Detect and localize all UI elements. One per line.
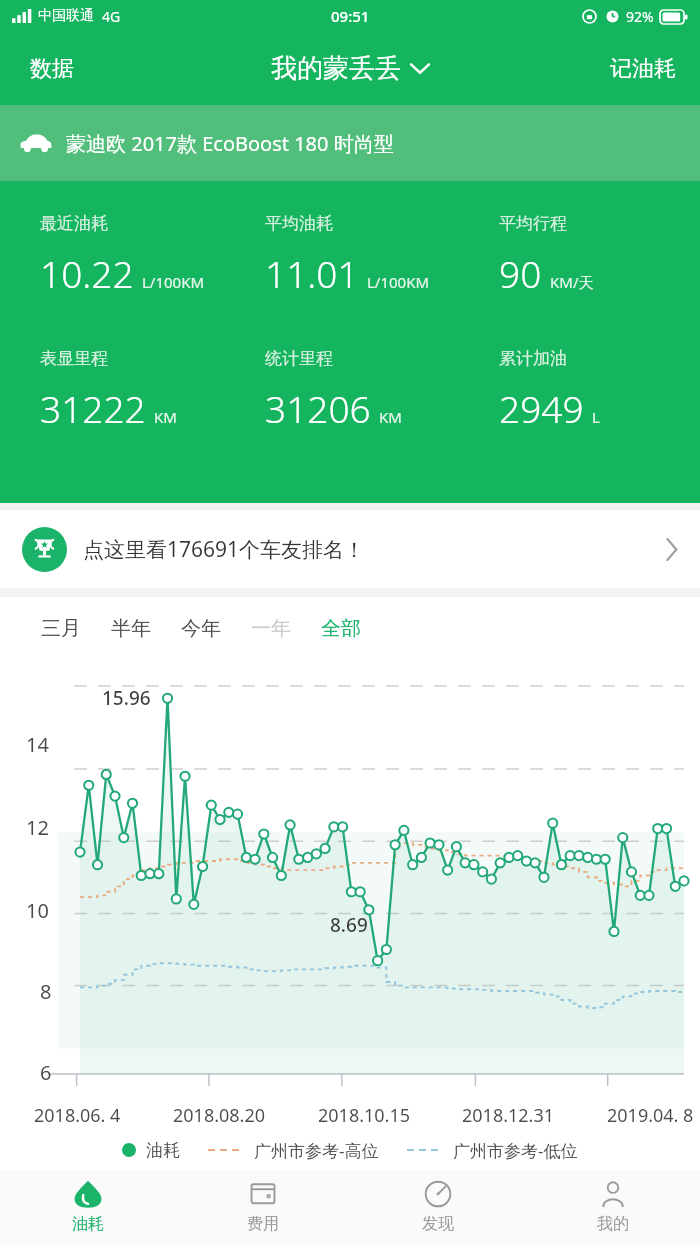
- staticText: 平均行程: [499, 213, 567, 234]
- button[interactable]: 三月: [26, 607, 96, 650]
- button[interactable]: 我的蒙丢丢: [257, 42, 443, 95]
- button[interactable]: 一年: [236, 607, 306, 650]
- staticText: 记油耗: [610, 55, 676, 83]
- staticText: 31222: [40, 383, 146, 433]
- staticText: 广州市参考-高位: [254, 1139, 379, 1162]
- staticText: L/100KM: [367, 272, 430, 292]
- staticText: KM: [379, 407, 402, 427]
- other: 费用: [249, 1180, 277, 1208]
- staticText: 92%: [626, 7, 654, 26]
- staticText: 统计里程: [265, 348, 333, 369]
- staticText: 8: [40, 978, 52, 1005]
- staticText: 2018.06. 4: [34, 1103, 121, 1128]
- staticText: 今年: [181, 616, 221, 641]
- staticText: KM: [154, 407, 177, 427]
- staticText: 发现: [422, 1214, 454, 1234]
- button[interactable]: 全部: [306, 607, 376, 650]
- staticText: 10: [26, 897, 49, 924]
- staticText: 半年: [111, 616, 151, 641]
- staticText: 15.96: [102, 685, 151, 711]
- staticText: 我的: [597, 1214, 629, 1234]
- staticText: 14: [26, 731, 49, 758]
- staticText: 2019.04. 8: [607, 1103, 694, 1128]
- button[interactable]: 点这里看176691个车友排名！: [0, 510, 700, 588]
- staticText: 最近油耗: [40, 213, 108, 234]
- button[interactable]: 发现: [350, 1170, 525, 1244]
- staticText: 全部: [321, 616, 361, 641]
- staticText: L: [592, 407, 600, 427]
- staticText: 10.22: [40, 248, 134, 298]
- staticText: 三月: [41, 616, 81, 641]
- staticText: 90: [499, 248, 542, 298]
- staticText: 2018.08.20: [173, 1103, 266, 1128]
- button[interactable]: 半年: [96, 607, 166, 650]
- button[interactable]: 费用: [175, 1170, 350, 1244]
- staticText: 12: [26, 814, 49, 841]
- staticText: 广州市参考-低位: [453, 1139, 578, 1162]
- staticText: KM/天: [550, 272, 594, 292]
- other: 油耗: [74, 1180, 102, 1208]
- staticText: 点这里看176691个车友排名！: [83, 535, 366, 564]
- staticText: 2018.12.31: [462, 1103, 555, 1128]
- button[interactable]: 蒙迪欧 2017款 EcoBoost 180 时尚型: [0, 105, 700, 181]
- staticText: 2018.10.15: [318, 1103, 411, 1128]
- button[interactable]: 今年: [166, 607, 236, 650]
- staticText: 09:51: [331, 6, 370, 26]
- other: 我的: [599, 1180, 627, 1208]
- staticText: 4G: [102, 7, 121, 26]
- staticText: 费用: [247, 1214, 279, 1234]
- staticText: 6: [40, 1059, 52, 1086]
- button[interactable]: 我的: [525, 1170, 700, 1244]
- staticText: 表显里程: [40, 348, 108, 369]
- staticText: 平均油耗: [265, 213, 333, 234]
- button[interactable]: 记油耗: [586, 39, 700, 99]
- staticText: 油耗: [72, 1214, 104, 1234]
- staticText: 中国联通: [38, 7, 94, 25]
- staticText: 一年: [251, 616, 291, 641]
- staticText: 我的蒙丢丢: [271, 52, 401, 85]
- staticText: 蒙迪欧 2017款 EcoBoost 180 时尚型: [66, 130, 394, 157]
- staticText: 11.01: [265, 248, 359, 298]
- staticText: 累计加油: [499, 348, 567, 369]
- staticText: 油耗: [146, 1140, 180, 1161]
- staticText: 2949: [499, 383, 584, 433]
- button[interactable]: 数据: [0, 39, 104, 99]
- staticText: 31206: [265, 383, 371, 433]
- staticText: 8.69: [330, 912, 368, 938]
- other: 发现: [424, 1180, 452, 1208]
- button[interactable]: 油耗: [0, 1170, 175, 1244]
- staticText: L/100KM: [142, 272, 205, 292]
- staticText: 数据: [30, 55, 74, 83]
